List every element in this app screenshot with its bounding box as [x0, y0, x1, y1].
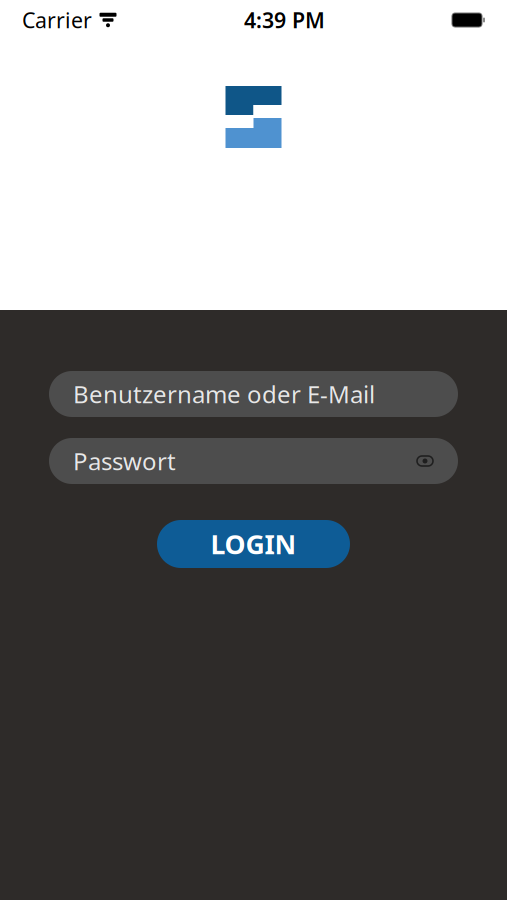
staticText: Benutzername oder E-Mail — [73, 378, 375, 410]
button[interactable]: Passwort — [49, 438, 458, 484]
staticText: Passwort — [73, 445, 176, 477]
staticText: LOGIN — [210, 526, 296, 562]
button[interactable]: Benutzername oder E-Mail — [49, 371, 458, 417]
button[interactable]: LOGIN — [157, 520, 350, 568]
staticText: Carrier — [22, 6, 92, 34]
staticText: 4:39 PM — [244, 6, 325, 34]
